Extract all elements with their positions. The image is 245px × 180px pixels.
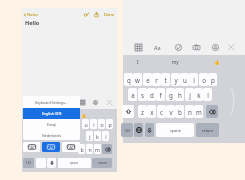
staticText: 👍: [81, 113, 86, 118]
button[interactable]: j: [185, 88, 194, 101]
button[interactable]: Delete: [206, 105, 218, 118]
button[interactable]: y: [171, 73, 180, 86]
button[interactable]: Markup: [91, 98, 100, 107]
staticText: x: [150, 108, 154, 116]
staticText: k: [197, 91, 201, 99]
button[interactable]: o: [199, 73, 208, 86]
staticText: return: [202, 128, 214, 133]
button[interactable]: a: [128, 88, 137, 101]
button[interactable]: p: [106, 119, 113, 129]
button[interactable]: d: [147, 88, 156, 101]
button[interactable]: x: [147, 105, 156, 118]
button[interactable]: Shift: [122, 105, 134, 118]
button[interactable]: Keyboard Settings…: [23, 96, 80, 108]
button[interactable]: v: [166, 105, 175, 118]
button[interactable]: i: [189, 73, 198, 86]
staticText: Keyboard Settings…: [35, 100, 68, 105]
staticText: a: [131, 91, 135, 99]
button[interactable]: s: [138, 88, 147, 101]
staticText: c: [160, 108, 163, 116]
button[interactable]: Nederlands: [23, 130, 80, 140]
staticText: s: [141, 91, 144, 99]
staticText: v: [169, 108, 173, 116]
button[interactable]: Emoji: [23, 119, 80, 130]
button[interactable]: Checklist: [172, 41, 184, 53]
button[interactable]: Done: [104, 12, 115, 17]
button[interactable]: k: [94, 131, 101, 141]
button[interactable]: l: [203, 88, 212, 101]
button[interactable]: r: [152, 73, 161, 86]
button[interactable]: p: [208, 73, 217, 86]
staticText: my: [172, 59, 179, 65]
button[interactable]: 👍: [79, 111, 87, 119]
button[interactable]: c: [157, 105, 166, 118]
staticText: m: [95, 146, 100, 153]
button[interactable]: q: [124, 73, 133, 86]
button[interactable]: k: [194, 88, 203, 101]
button[interactable]: b: [78, 144, 85, 154]
button[interactable]: t: [161, 73, 170, 86]
staticText: Nederlands: [42, 133, 62, 138]
button[interactable]: Camera: [190, 41, 202, 53]
button[interactable]: Table: [78, 98, 87, 107]
button[interactable]: w: [133, 73, 142, 86]
staticText: k: [96, 133, 99, 140]
staticText: 👍: [214, 60, 220, 65]
button[interactable]: Emoji keyboard: [23, 142, 40, 152]
button[interactable]: h: [175, 88, 184, 101]
staticText: i: [193, 76, 195, 84]
button[interactable]: Markup: [209, 41, 221, 53]
button[interactable]: i: [90, 119, 97, 129]
button[interactable]: Delete: [102, 144, 112, 154]
button[interactable]: o: [98, 119, 105, 129]
staticText: l: [105, 133, 107, 140]
button[interactable]: n: [86, 144, 93, 154]
button[interactable]: return: [92, 158, 112, 168]
button[interactable]: Aa: [151, 41, 163, 53]
button[interactable]: n: [185, 105, 194, 118]
button[interactable]: j: [86, 131, 93, 141]
button[interactable]: Table: [132, 41, 144, 53]
button[interactable]: my: [163, 56, 187, 68]
button[interactable]: z: [138, 105, 147, 118]
button[interactable]: f: [156, 88, 165, 101]
button[interactable]: m: [94, 144, 101, 154]
button[interactable]: English (US): [23, 108, 80, 119]
button[interactable]: e: [143, 73, 152, 86]
button[interactable]: Language: [36, 158, 46, 168]
button[interactable]: spatie: [156, 123, 194, 137]
button[interactable]: Notes: [23, 12, 39, 17]
staticText: b: [178, 108, 182, 116]
button[interactable]: l: [102, 131, 109, 141]
staticText: Hello: [25, 19, 40, 26]
staticText: p: [108, 121, 112, 128]
staticText: d: [150, 91, 154, 99]
button[interactable]: 👍: [209, 56, 225, 68]
button[interactable]: English keyboard: [42, 142, 60, 152]
staticText: 123: [26, 161, 31, 165]
button[interactable]: g: [166, 88, 175, 101]
staticText: Notes: [27, 12, 39, 17]
button[interactable]: Close: [225, 41, 237, 53]
button[interactable]: b: [175, 105, 184, 118]
button[interactable]: space: [58, 158, 91, 168]
staticText: t: [164, 76, 167, 84]
staticText: j: [189, 91, 191, 99]
button[interactable]: I: [126, 56, 150, 68]
button[interactable]: m: [194, 105, 203, 118]
button[interactable]: Dictate: [47, 158, 56, 168]
button[interactable]: u: [82, 119, 89, 129]
button[interactable]: Language: [134, 123, 143, 137]
button[interactable]: Close: [105, 98, 114, 107]
button[interactable]: return: [196, 123, 219, 137]
button[interactable]: Dictate: [145, 123, 154, 137]
button[interactable]: u: [180, 73, 189, 86]
button[interactable]: Dutch keyboard: [62, 142, 80, 152]
staticText: space: [70, 161, 79, 165]
button[interactable]: 123: [121, 123, 133, 137]
staticText: spatie: [170, 128, 181, 133]
button[interactable]: Markup: [83, 11, 90, 18]
button[interactable]: Share: [93, 11, 100, 18]
staticText: f: [159, 91, 162, 99]
button[interactable]: 123: [23, 158, 34, 168]
